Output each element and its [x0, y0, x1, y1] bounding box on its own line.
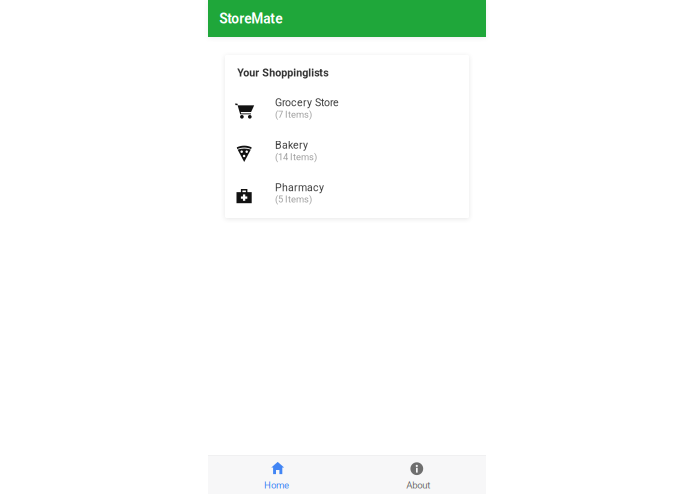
staticText: Bakery: [275, 139, 308, 151]
staticText: (5 Items): [275, 194, 312, 205]
staticText: (14 Items): [275, 151, 317, 162]
button[interactable]: About: [347, 456, 486, 494]
staticText: Home: [264, 480, 289, 491]
button[interactable]: Home: [208, 456, 347, 494]
staticText: Your Shoppinglists: [237, 66, 328, 79]
staticText: Pharmacy: [275, 181, 324, 194]
staticText: About: [406, 480, 430, 491]
button[interactable]: Grocery Store: [236, 96, 469, 138]
staticText: StoreMate: [219, 11, 282, 27]
staticText: Grocery Store: [275, 97, 339, 109]
button[interactable]: Bakery: [236, 138, 469, 180]
staticText: (7 Items): [275, 109, 312, 120]
button[interactable]: Pharmacy: [236, 180, 469, 223]
